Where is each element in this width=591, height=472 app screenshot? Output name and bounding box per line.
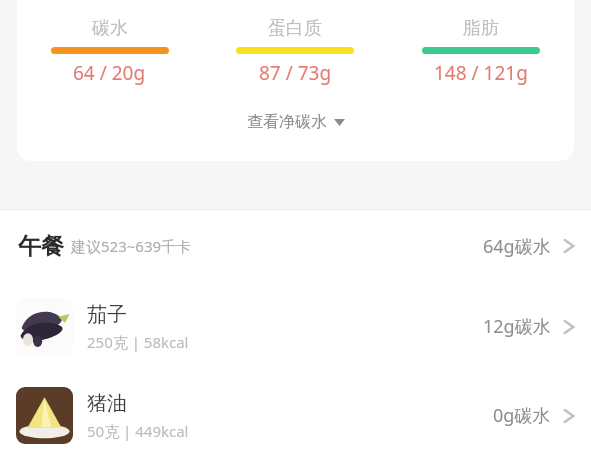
button[interactable]: 午餐 — [0, 210, 591, 282]
staticText: 64 / 20g — [73, 60, 146, 86]
staticText: 午餐 — [18, 232, 64, 261]
staticText: 250克 | 58kcal — [87, 332, 189, 352]
staticText: 87 / 73g — [259, 60, 332, 86]
button[interactable]: 茄子 — [0, 282, 591, 371]
staticText: 0g碳水 — [493, 403, 551, 428]
staticText: 茄子 — [87, 302, 127, 327]
button[interactable]: 蛋白质 — [202, 17, 388, 86]
staticText: 建议523~639千卡 — [71, 236, 192, 256]
staticText: 64g碳水 — [483, 234, 551, 259]
staticText: 148 / 121g — [434, 60, 528, 86]
button[interactable]: 猪油 — [0, 371, 591, 460]
staticText: 蛋白质 — [268, 17, 322, 40]
button[interactable]: 碳水 — [17, 17, 202, 86]
button[interactable]: 脂肪 — [388, 17, 574, 86]
staticText: 猪油 — [87, 391, 127, 416]
staticText: 脂肪 — [463, 17, 499, 40]
staticText: 查看净碳水 — [247, 112, 327, 132]
staticText: 碳水 — [92, 17, 128, 40]
staticText: 12g碳水 — [483, 314, 551, 339]
button[interactable]: 查看净碳水 — [237, 108, 355, 136]
staticText: 50克 | 449kcal — [87, 421, 189, 441]
